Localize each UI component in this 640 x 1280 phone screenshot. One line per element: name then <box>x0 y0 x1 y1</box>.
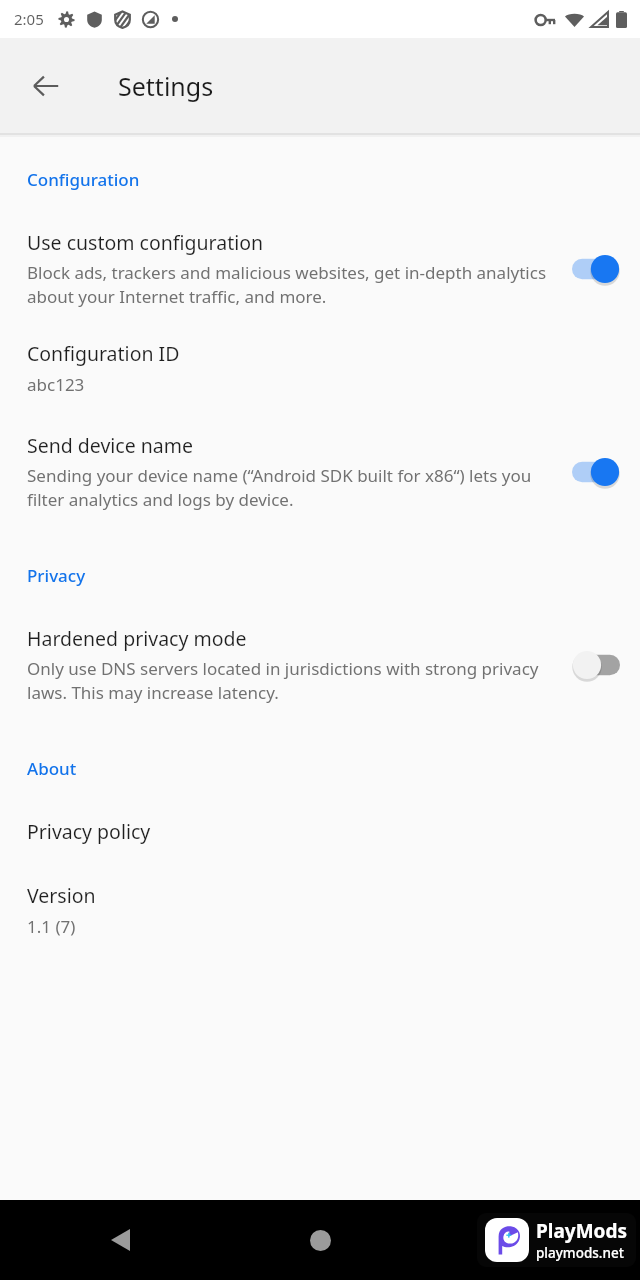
staticText: Hardened privacy mode <box>27 625 247 652</box>
staticText: Privacy <box>27 564 86 587</box>
staticText: Settings <box>118 69 214 103</box>
button[interactable]: Hardened privacy mode <box>0 625 640 704</box>
staticText: Configuration <box>27 168 140 191</box>
staticText: 2:05 <box>14 9 44 29</box>
button[interactable]: Use custom configuration <box>0 229 640 308</box>
staticText: Configuration ID <box>27 340 180 367</box>
staticText: About <box>27 757 77 780</box>
button[interactable]: Toggle off <box>572 650 620 680</box>
button[interactable]: Toggle on <box>572 457 620 487</box>
button[interactable]: Back <box>92 1212 148 1268</box>
button[interactable]: Send device name <box>0 432 640 511</box>
staticText: Use custom configuration <box>27 229 264 256</box>
staticText: Send device name <box>27 432 194 459</box>
staticText: playmods.net <box>536 1244 624 1262</box>
button[interactable]: Toggle on <box>572 254 620 284</box>
button[interactable]: Configuration ID <box>0 340 640 396</box>
staticText: abc123 <box>27 373 85 396</box>
staticText: Version <box>27 882 96 909</box>
staticText: Sending your device name (“Android SDK b… <box>27 464 554 511</box>
button[interactable]: Privacy policy <box>0 818 640 845</box>
staticText: PlayMods <box>536 1218 628 1244</box>
staticText: Block ads, trackers and malicious websit… <box>27 261 554 308</box>
staticText: Only use DNS servers located in jurisdic… <box>27 657 554 704</box>
staticText: Privacy policy <box>27 818 151 845</box>
button[interactable]: Version <box>0 882 640 938</box>
staticText: 1.1 (7) <box>27 915 76 938</box>
button[interactable]: Back <box>18 58 74 114</box>
button[interactable]: Home <box>292 1212 348 1268</box>
